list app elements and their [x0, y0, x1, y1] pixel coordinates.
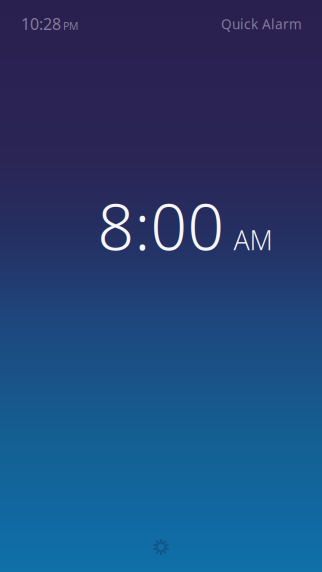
staticText: PM [63, 19, 78, 33]
staticText: AM [233, 222, 272, 258]
staticText: 10:28 [21, 13, 61, 35]
button[interactable]: Settings [131, 530, 191, 564]
staticText: Quick Alarm [221, 15, 302, 33]
staticText: 8:00 [97, 182, 224, 269]
button[interactable]: Quick Alarm [221, 15, 302, 33]
